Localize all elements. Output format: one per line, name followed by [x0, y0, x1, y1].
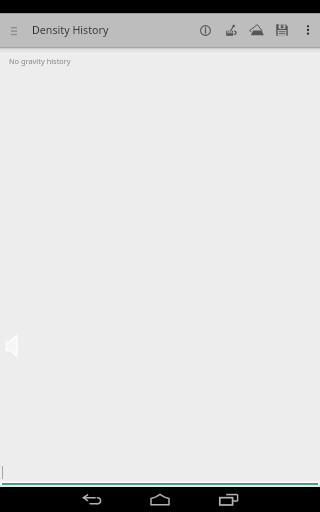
- button[interactable]: Gravity entry field: [0, 460, 320, 487]
- staticText: Density History: [32, 23, 109, 38]
- button[interactable]: Measure gravity: [244, 13, 270, 47]
- button[interactable]: More options: [295, 13, 320, 47]
- button[interactable]: Brew: [218, 13, 244, 47]
- button[interactable]: Back: [60, 487, 124, 512]
- button[interactable]: Save: [269, 13, 295, 47]
- button[interactable]: Recent apps: [197, 487, 261, 512]
- button[interactable]: Info: [192, 13, 218, 47]
- button[interactable]: Home: [128, 487, 192, 512]
- staticText: No gravity history: [9, 56, 71, 66]
- button[interactable]: Open navigation drawer: [0, 13, 27, 47]
